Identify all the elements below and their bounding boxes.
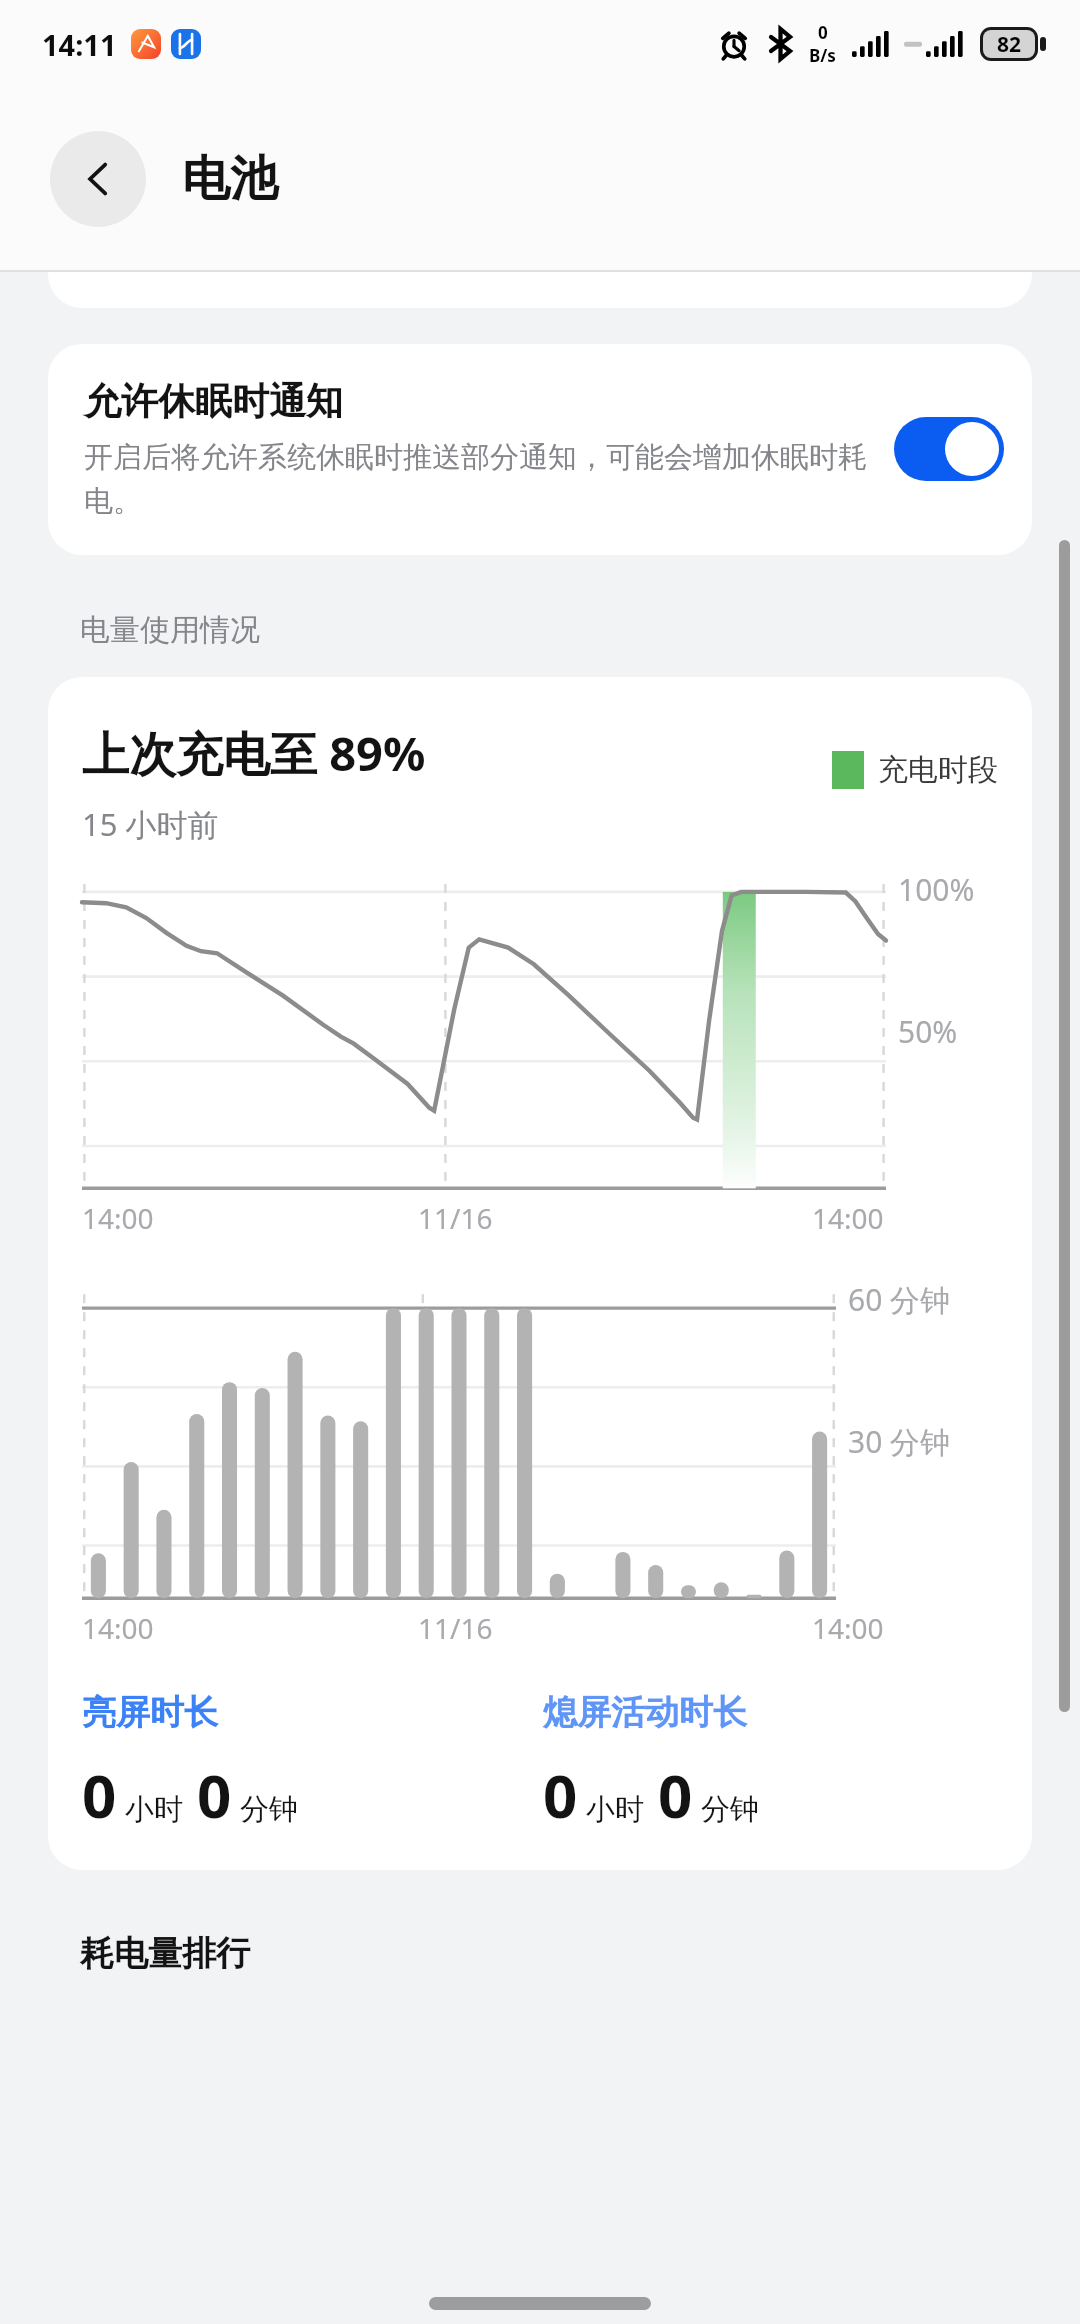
staticText: 电池 <box>182 149 278 209</box>
staticText: 14:00 <box>82 1609 154 1647</box>
staticText: 14:00 <box>812 1199 884 1237</box>
button[interactable]: 上次充电至 89% <box>48 677 1032 1870</box>
staticText: 50% <box>898 1011 958 1052</box>
staticText: 15 小时前 <box>82 803 219 845</box>
staticText: 82 <box>997 30 1022 58</box>
staticText: 0 <box>658 1754 693 1836</box>
button[interactable]: 允许休眠时通知 <box>48 344 1032 555</box>
staticText: 电量使用情况 <box>80 611 260 649</box>
button[interactable]: 熄屏活动时长 <box>543 1691 1004 1836</box>
staticText: 0 <box>543 1754 578 1836</box>
staticText: 30 分钟 <box>848 1421 951 1462</box>
staticText: 0 <box>818 21 828 44</box>
staticText: 11/16 <box>418 1609 493 1647</box>
staticText: B/s <box>809 44 836 67</box>
staticText: 0 <box>82 1754 117 1836</box>
staticText: 14:11 <box>42 25 117 64</box>
staticText: 小时 <box>125 1791 183 1828</box>
staticText: 熄屏活动时长 <box>543 1691 747 1734</box>
staticText: 0 <box>197 1754 232 1836</box>
staticText: 耗电量排行 <box>80 1932 250 1975</box>
staticText: 11/16 <box>418 1199 493 1237</box>
staticText: 分钟 <box>240 1791 298 1828</box>
staticText: 14:00 <box>812 1609 884 1647</box>
staticText: 亮屏时长 <box>82 1691 218 1734</box>
staticText: 60 分钟 <box>848 1279 951 1320</box>
staticText: 允许休眠时通知 <box>84 378 343 425</box>
staticText: 小时 <box>586 1791 644 1828</box>
button[interactable]: 亮屏时长 <box>82 1691 543 1836</box>
staticText: 分钟 <box>701 1791 759 1828</box>
staticText: 100% <box>898 869 975 910</box>
staticText: 14:00 <box>82 1199 154 1237</box>
staticText: 上次充电至 89% <box>82 721 426 785</box>
staticText: 开启后将允许系统休眠时推送部分通知，可能会增加休眠时耗电。 <box>84 439 874 519</box>
button[interactable]: 允许休眠时通知开关 <box>894 417 1004 481</box>
staticText: 充电时段 <box>878 751 998 789</box>
button[interactable]: 返回 <box>50 131 146 227</box>
